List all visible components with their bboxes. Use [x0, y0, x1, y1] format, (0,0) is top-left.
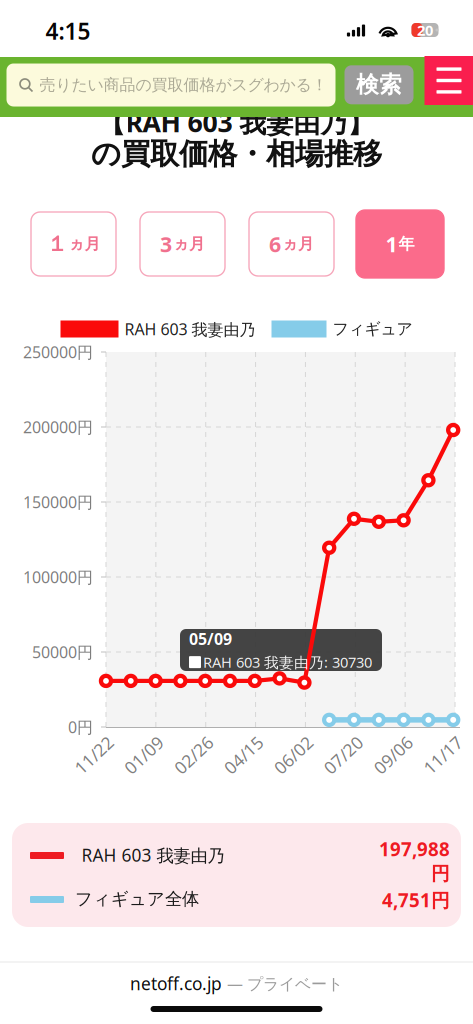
staticText: 05/09 — [189, 628, 232, 649]
staticText: 250000円 — [23, 341, 93, 363]
staticText: RAH 603 我妻由乃 — [124, 318, 255, 340]
staticText: ヵ月 — [68, 234, 100, 254]
staticText: 100000円 — [23, 566, 93, 588]
staticText: 4,751円 — [382, 888, 450, 912]
staticText: 50000円 — [32, 641, 93, 663]
staticText: 1 — [385, 230, 397, 258]
staticText: 11/22 — [71, 743, 117, 766]
staticText: 6 — [269, 230, 281, 258]
button[interactable]: メニュー — [424, 56, 473, 105]
staticText: 20 — [417, 20, 433, 40]
staticText: 円 — [431, 862, 450, 885]
staticText: 年 — [398, 234, 414, 254]
staticText: 06/02 — [270, 743, 316, 766]
staticText: フィギュア全体 — [75, 888, 199, 910]
staticText: の買取価格・相場推移 — [91, 136, 382, 172]
staticText: 200000円 — [23, 416, 93, 438]
staticText: 02/26 — [171, 743, 217, 766]
staticText: 検索 — [356, 71, 402, 99]
staticText: RAH 603 我妻由乃: 30730 — [203, 652, 372, 672]
button[interactable]: 1 — [356, 210, 444, 278]
staticText: — プライベート — [227, 973, 343, 994]
staticText: 0円 — [68, 716, 93, 738]
staticText: 04/15 — [221, 743, 267, 766]
staticText: netoff.co.jp — [130, 972, 222, 995]
staticText: フィギュア — [332, 319, 412, 339]
staticText: ヵ月 — [282, 234, 314, 254]
staticText: 【RAH 603 我妻由乃】 — [98, 104, 374, 140]
staticText: ヵ月 — [173, 234, 205, 254]
staticText: 売りたい商品の買取価格がスグわかる！ — [39, 75, 327, 95]
staticText: RAH 603 我妻由乃 — [81, 843, 224, 866]
button[interactable]: 検索 — [344, 65, 413, 104]
button[interactable]: 3 — [140, 212, 225, 276]
staticText: １ — [46, 231, 67, 257]
staticText: 01/09 — [121, 743, 167, 766]
staticText: 4:15 — [45, 16, 90, 46]
button[interactable]: 6 — [249, 212, 334, 276]
button[interactable]: １ — [31, 212, 116, 276]
staticText: 197,988 — [379, 837, 450, 861]
staticText: 150000円 — [23, 491, 93, 513]
staticText: 07/20 — [320, 743, 366, 766]
staticText: 11/17 — [420, 743, 466, 766]
staticText: 3 — [160, 230, 172, 258]
staticText: 09/06 — [370, 743, 416, 766]
button[interactable]: 売りたい商品の買取価格がスグわかる！ — [6, 63, 335, 106]
